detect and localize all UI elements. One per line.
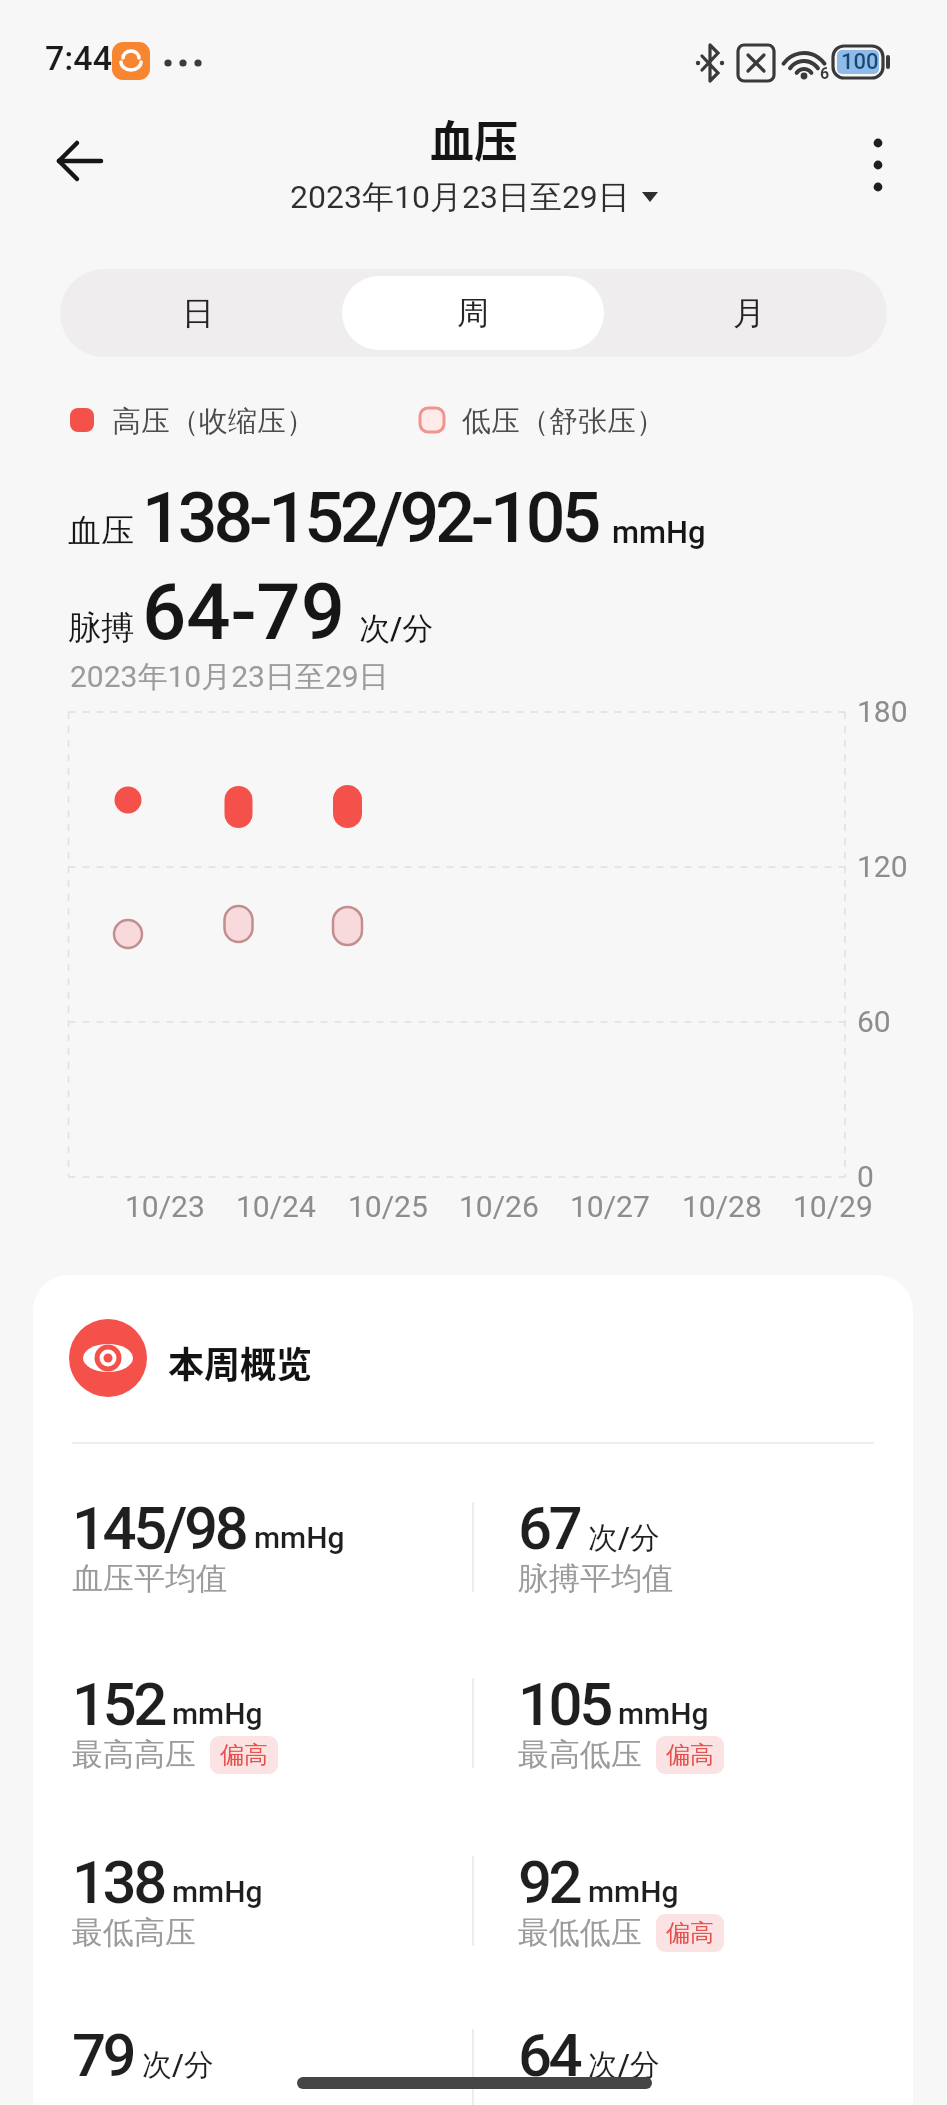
staticText: 血压	[68, 510, 134, 552]
staticText: 67	[518, 1493, 580, 1563]
staticText: 2023年10月23日至29日	[290, 177, 630, 217]
staticText: 0	[857, 1159, 874, 1194]
staticText: 79	[72, 2020, 134, 2090]
staticText: 10/26	[459, 1189, 539, 1224]
staticText: 105	[518, 1669, 610, 1739]
staticText: 偏高	[666, 1918, 714, 1948]
staticText: 脉搏	[68, 607, 134, 649]
button[interactable]	[48, 130, 112, 192]
staticText: mmHg	[612, 514, 706, 550]
staticText: 10/29	[793, 1189, 873, 1224]
button[interactable]: 月	[611, 269, 887, 357]
staticText: 血压平均值	[72, 1559, 227, 1598]
staticText: 180	[857, 694, 908, 729]
staticText: 2023年10月23日至29日	[70, 658, 389, 696]
staticText: 10/28	[682, 1189, 762, 1224]
staticText: 64-79	[142, 567, 345, 658]
staticText: 次/分	[588, 2046, 660, 2084]
staticText: 最低低压	[518, 1913, 642, 1952]
staticText: 偏高	[220, 1740, 268, 1770]
staticText: 100	[841, 49, 879, 75]
staticText: mmHg	[172, 1874, 263, 1909]
staticText: 10/24	[236, 1189, 316, 1224]
staticText: 145/98	[72, 1493, 246, 1563]
staticText: 138	[72, 1847, 164, 1917]
button[interactable]: 本周概览	[33, 1275, 913, 2105]
staticText: 最高高压	[72, 1735, 196, 1774]
staticText: mmHg	[254, 1520, 345, 1555]
staticText: 152	[72, 1669, 164, 1739]
staticText: 10/27	[570, 1189, 650, 1224]
staticText: 最低高压	[72, 1913, 196, 1952]
staticText: 低压（舒张压）	[462, 403, 665, 440]
staticText: 6	[820, 64, 830, 83]
staticText: 64	[518, 2020, 580, 2090]
staticText: mmHg	[618, 1696, 709, 1731]
staticText: 日	[182, 293, 214, 333]
staticText: 10/25	[348, 1189, 428, 1224]
staticText: 10/23	[125, 1189, 205, 1224]
staticText: 月	[733, 293, 765, 333]
staticText: mmHg	[172, 1696, 263, 1731]
staticText: 60	[857, 1004, 891, 1039]
staticText: 本周概览	[168, 1336, 313, 1388]
staticText: 周	[457, 293, 489, 333]
button[interactable]	[856, 132, 900, 198]
button[interactable]: 2023年10月23日至29日	[290, 177, 658, 217]
staticText: 次/分	[359, 609, 434, 648]
staticText: mmHg	[588, 1874, 679, 1909]
staticText: 138-152/92-105	[142, 477, 598, 559]
staticText: 7:44	[45, 38, 112, 78]
staticText: 92	[518, 1847, 580, 1917]
staticText: 120	[857, 849, 908, 884]
button[interactable]: 日	[60, 269, 335, 357]
staticText: 最高低压	[518, 1735, 642, 1774]
staticText: 次/分	[142, 2046, 214, 2084]
staticText: 脉搏平均值	[518, 1559, 673, 1598]
staticText: 血压	[430, 107, 518, 171]
button[interactable]: 周	[342, 276, 604, 350]
staticText: 偏高	[666, 1740, 714, 1770]
staticText: 高压（收缩压）	[112, 403, 315, 440]
staticText: 次/分	[588, 1519, 660, 1557]
